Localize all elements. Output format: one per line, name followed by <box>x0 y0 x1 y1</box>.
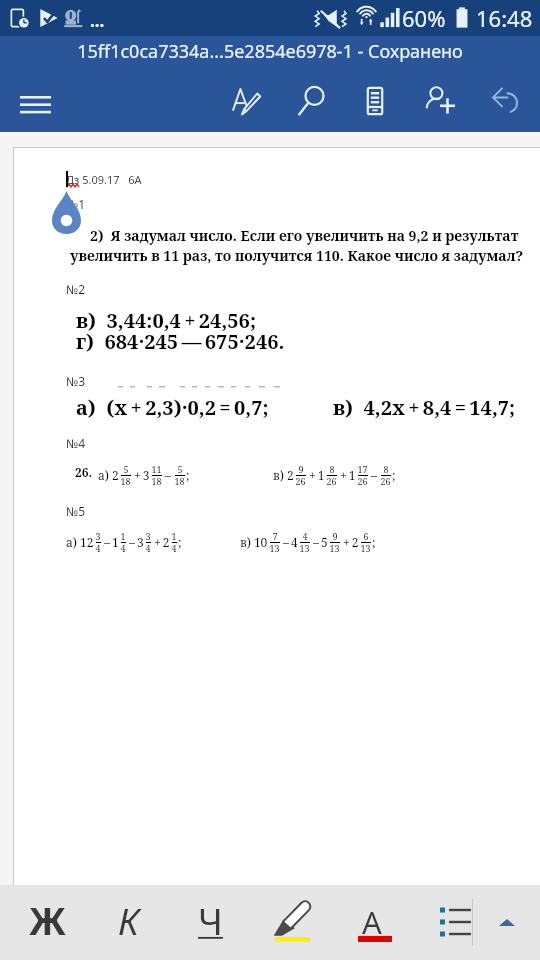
staticText: 11 <box>151 463 162 475</box>
staticText: 26 <box>357 475 368 487</box>
staticText: + 3 <box>132 467 150 483</box>
button[interactable]: Font color <box>346 895 404 953</box>
staticText: 8 <box>383 463 389 475</box>
staticText: №5 <box>66 503 86 519</box>
staticText: 6 <box>363 530 369 542</box>
staticText: в) 4,2x + 8,4 = 14,7; <box>333 394 516 421</box>
staticText: 8 <box>329 463 335 475</box>
staticText: ; <box>178 534 182 550</box>
staticText: №2 <box>66 281 86 297</box>
button[interactable]: Bullet list <box>422 891 480 949</box>
staticText: а) (x + 2,3)·0,2 = 0,7; <box>76 394 269 421</box>
staticText: + 2 <box>341 534 359 550</box>
button[interactable]: Ж <box>18 891 76 949</box>
staticText: 26 <box>326 475 337 487</box>
staticText: 26 <box>295 475 306 487</box>
staticText: 13 <box>329 542 340 554</box>
staticText: 3 <box>95 530 101 542</box>
staticText: 4 <box>171 542 177 554</box>
staticText: 4 <box>95 542 101 554</box>
staticText: К <box>118 895 139 945</box>
staticText: 13 <box>299 542 310 554</box>
staticText: №1 <box>66 196 86 212</box>
staticText: + 2 <box>152 534 170 550</box>
staticText: 18 <box>120 475 131 487</box>
staticText: Ж <box>29 895 66 945</box>
staticText: 3 <box>145 530 151 542</box>
staticText: – 1 <box>102 534 119 550</box>
staticText: – 4 <box>281 534 298 550</box>
staticText: 18 <box>151 475 162 487</box>
staticText: + 1 <box>338 467 356 483</box>
staticText: – 3 <box>127 534 144 550</box>
staticText: 7 <box>272 530 278 542</box>
staticText: а) 12 <box>66 534 94 550</box>
staticText: ... <box>90 9 105 32</box>
staticText: 5 <box>123 463 129 475</box>
staticText: 15ff1c0ca7334a...5e2854e6978-1 - Сохране… <box>77 39 463 64</box>
staticText: в) 10 <box>240 534 268 550</box>
staticText: ; <box>372 534 376 550</box>
staticText: г) 684·245 — 675·246. <box>76 328 285 355</box>
staticText: ; <box>392 467 396 483</box>
staticText: A <box>362 901 382 943</box>
staticText: в) 2 <box>273 467 294 483</box>
staticText: 4 <box>120 542 126 554</box>
staticText: 17 <box>357 463 368 475</box>
staticText: 9 <box>298 463 304 475</box>
staticText: – <box>163 467 173 483</box>
button[interactable]: Menu <box>7 77 63 133</box>
button[interactable]: Ч <box>181 891 239 949</box>
button[interactable]: Expand <box>484 900 530 946</box>
staticText: 26 <box>380 475 391 487</box>
staticText: увеличить в 11 раз, то получится 110. Ка… <box>70 246 524 265</box>
staticText: 5 <box>177 463 183 475</box>
button[interactable]: Undo <box>481 77 529 125</box>
staticText: 16:48 <box>476 3 533 33</box>
staticText: 1 <box>120 530 126 542</box>
staticText: ; <box>186 467 190 483</box>
staticText: №3 <box>66 373 86 389</box>
button[interactable]: Share <box>416 77 464 125</box>
staticText: в) 3,44:0,4 + 24,56; <box>76 307 256 334</box>
button[interactable]: Reading view <box>351 77 399 125</box>
staticText: 26. <box>75 464 93 480</box>
staticText: 4 <box>302 530 308 542</box>
button[interactable]: Search <box>289 77 337 125</box>
staticText: Ч <box>198 895 223 945</box>
button[interactable]: Highlight <box>264 891 322 949</box>
staticText: 60% <box>402 3 446 33</box>
staticText: 13 <box>269 542 280 554</box>
staticText: 4 <box>145 542 151 554</box>
staticText: а) 2 <box>98 467 119 483</box>
staticText: 18 <box>174 475 185 487</box>
button[interactable]: Draw <box>223 77 271 125</box>
staticText: 9 <box>332 530 338 542</box>
button[interactable]: К <box>99 891 157 949</box>
staticText: 13 <box>360 542 371 554</box>
staticText: 2) Я задумал число. Если его увеличить н… <box>90 226 519 245</box>
staticText: Дз 5.09.17 6А <box>66 172 142 187</box>
staticText: №4 <box>66 435 86 451</box>
staticText: 1 <box>171 530 177 542</box>
staticText: – 5 <box>311 534 328 550</box>
staticText: – <box>369 467 379 483</box>
staticText: + 1 <box>307 467 325 483</box>
